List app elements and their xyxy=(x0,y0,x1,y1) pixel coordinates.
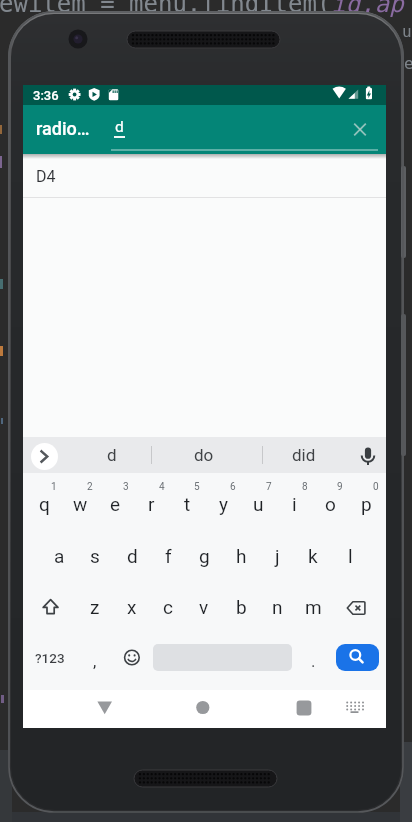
staticText: u xyxy=(253,493,264,515)
staticText: D4 xyxy=(36,167,56,186)
button[interactable] xyxy=(286,693,324,725)
staticText: ?123 xyxy=(35,650,65,666)
button[interactable] xyxy=(31,443,58,470)
staticText: l xyxy=(348,545,353,567)
staticText: z xyxy=(90,596,100,618)
staticText: 9 xyxy=(337,481,343,493)
staticText: e xyxy=(110,493,121,515)
staticText: k xyxy=(308,545,318,567)
staticText: do xyxy=(194,445,214,465)
staticText: 8 xyxy=(302,481,308,493)
button[interactable]: b xyxy=(223,581,259,633)
button[interactable] xyxy=(352,437,386,473)
staticText: 4 xyxy=(159,481,165,493)
staticText: s xyxy=(90,545,100,567)
button[interactable]: x xyxy=(114,581,150,633)
staticText: g xyxy=(199,545,210,567)
staticText: t xyxy=(184,493,191,515)
staticText: w xyxy=(73,493,88,515)
button[interactable]: , xyxy=(77,633,113,683)
staticText: i xyxy=(292,493,297,515)
button[interactable] xyxy=(262,437,352,473)
staticText: x xyxy=(127,596,137,618)
button[interactable]: w xyxy=(62,478,98,530)
button[interactable] xyxy=(337,693,375,725)
staticText: c xyxy=(163,596,173,618)
staticText: f xyxy=(165,545,172,567)
staticText: y xyxy=(219,493,228,515)
staticText: did xyxy=(292,445,316,465)
staticText: d xyxy=(107,445,117,465)
button[interactable]: r xyxy=(133,478,169,530)
button[interactable]: t xyxy=(169,478,205,530)
button[interactable] xyxy=(23,581,77,633)
button[interactable] xyxy=(150,633,295,683)
button[interactable]: s xyxy=(77,530,113,581)
button[interactable]: . xyxy=(295,633,331,683)
staticText: 5 xyxy=(194,481,200,493)
button[interactable]: z xyxy=(77,581,113,633)
button[interactable] xyxy=(114,633,150,683)
button[interactable]: l xyxy=(332,530,368,581)
staticText: r xyxy=(148,493,155,515)
staticText: , xyxy=(93,651,97,671)
button[interactable]: q xyxy=(26,478,62,530)
staticText: h xyxy=(236,545,247,567)
button[interactable]: h xyxy=(223,530,259,581)
button[interactable]: p xyxy=(348,478,384,530)
button[interactable] xyxy=(342,111,379,148)
staticText: d xyxy=(115,118,124,136)
staticText: j xyxy=(275,545,280,567)
button[interactable] xyxy=(336,644,379,671)
button[interactable]: u xyxy=(240,478,276,530)
button[interactable]: d xyxy=(114,530,150,581)
staticText: d xyxy=(127,545,138,567)
button[interactable] xyxy=(184,693,222,725)
staticText: e xyxy=(404,54,412,73)
staticText: radio… xyxy=(36,118,90,139)
button[interactable]: a xyxy=(41,530,77,581)
staticText: m xyxy=(305,596,322,618)
button[interactable] xyxy=(151,437,262,473)
staticText: 6 xyxy=(230,481,236,493)
staticText: . xyxy=(311,651,316,671)
staticText: q xyxy=(39,493,50,515)
button[interactable]: c xyxy=(150,581,186,633)
button[interactable]: n xyxy=(259,581,295,633)
button[interactable]: i xyxy=(276,478,312,530)
staticText: ewitem = menu.findItem(id.ap xyxy=(0,0,404,18)
button[interactable]: ?123 xyxy=(23,633,77,683)
staticText: a xyxy=(54,545,65,567)
button[interactable]: v xyxy=(186,581,222,633)
staticText: u xyxy=(402,22,412,41)
staticText: o xyxy=(325,493,336,515)
button[interactable] xyxy=(59,437,150,473)
button[interactable]: g xyxy=(186,530,222,581)
button[interactable]: k xyxy=(295,530,331,581)
button[interactable]: e xyxy=(97,478,133,530)
staticText: p xyxy=(361,493,372,515)
button[interactable] xyxy=(332,581,386,633)
button[interactable]: D4 xyxy=(23,155,386,197)
staticText: v xyxy=(199,596,209,618)
button[interactable]: o xyxy=(312,478,348,530)
staticText: 2 xyxy=(87,481,93,493)
button[interactable]: j xyxy=(259,530,295,581)
button[interactable]: m xyxy=(295,581,331,633)
staticText: 3 xyxy=(123,481,129,493)
button[interactable] xyxy=(86,693,124,725)
staticText: b xyxy=(236,596,247,618)
staticText: 0 xyxy=(373,481,379,493)
button[interactable]: f xyxy=(150,530,186,581)
button[interactable] xyxy=(108,107,338,152)
button[interactable]: y xyxy=(205,478,241,530)
staticText: n xyxy=(272,596,283,618)
staticText: 7 xyxy=(266,481,272,493)
staticText: 3:36 xyxy=(33,88,59,103)
staticText: 1 xyxy=(51,481,57,493)
